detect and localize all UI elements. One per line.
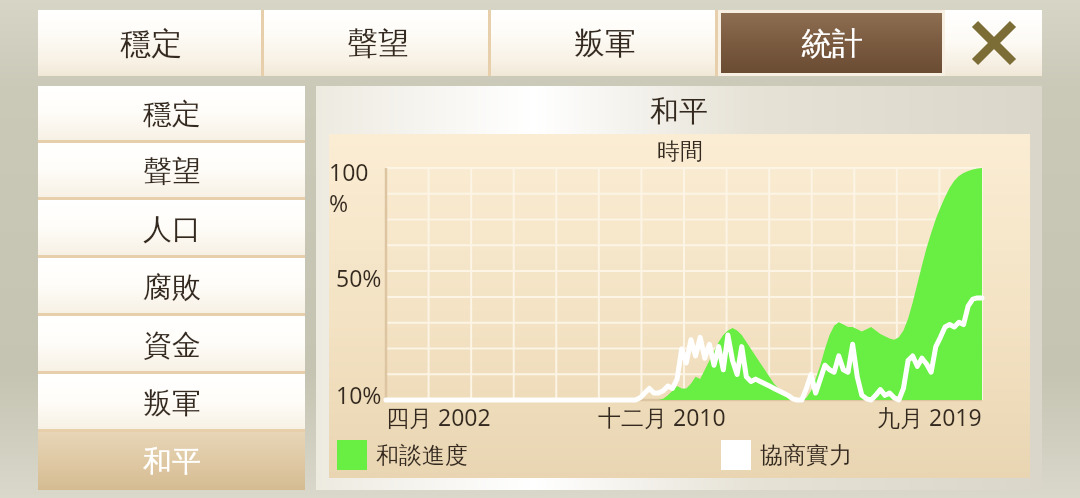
staticText: 10% xyxy=(336,379,382,410)
staticText: 和談進度 xyxy=(376,441,468,470)
button[interactable]: 和平 xyxy=(38,432,305,490)
staticText: 四月 2002 xyxy=(386,401,491,432)
staticText: 九月 2019 xyxy=(877,401,982,432)
staticText: 統計 xyxy=(801,24,863,63)
button[interactable]: 聲望 xyxy=(264,10,491,76)
button[interactable]: 叛軍 xyxy=(491,10,718,76)
staticText: 時間 xyxy=(657,137,703,166)
button[interactable]: 穩定 xyxy=(38,10,264,76)
staticText: 聲望 xyxy=(143,153,201,190)
button[interactable]: 聲望 xyxy=(38,143,305,200)
button[interactable]: Close xyxy=(945,10,1042,76)
button[interactable]: 資金 xyxy=(38,316,305,374)
staticText: 腐敗 xyxy=(143,269,201,306)
staticText: 穩定 xyxy=(143,96,201,133)
button[interactable]: 穩定 xyxy=(38,86,305,143)
staticText: 協商實力 xyxy=(760,441,852,470)
staticText: 叛軍 xyxy=(574,24,636,63)
staticText: 叛軍 xyxy=(143,385,201,422)
staticText: 人口 xyxy=(143,211,201,248)
staticText: 穩定 xyxy=(120,24,182,63)
staticText: 聲望 xyxy=(347,24,409,63)
staticText: 100% xyxy=(329,156,382,218)
staticText: 50% xyxy=(336,262,382,293)
staticText: 資金 xyxy=(143,327,201,364)
button[interactable]: 腐敗 xyxy=(38,258,305,316)
button[interactable]: 叛軍 xyxy=(38,374,305,432)
button[interactable]: 人口 xyxy=(38,200,305,258)
staticText: 十二月 2010 xyxy=(598,401,726,432)
staticText: 和平 xyxy=(650,93,708,130)
staticText: 和平 xyxy=(143,443,201,480)
button[interactable]: 統計 xyxy=(718,10,945,76)
